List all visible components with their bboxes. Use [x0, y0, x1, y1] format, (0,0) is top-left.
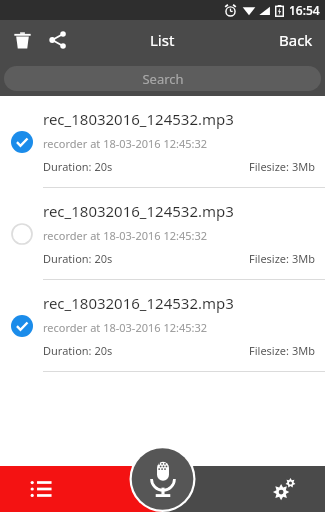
button[interactable]: rec_18032016_124532.mp3 [0, 188, 325, 280]
button[interactable]: Delete [4, 22, 40, 58]
staticText: Filesize: 3Mb [249, 159, 315, 174]
staticText: Duration: 20s [43, 251, 113, 266]
staticText: Filesize: 3Mb [249, 251, 315, 266]
staticText: Filesize: 3Mb [249, 343, 315, 358]
staticText: rec_18032016_124532.mp3 [43, 201, 234, 221]
button[interactable]: Back [267, 20, 325, 60]
staticText: 16:54 [289, 2, 320, 18]
staticText: recorder at 18-03-2016 12:45:32 [43, 228, 208, 243]
staticText: Duration: 20s [43, 343, 113, 358]
button[interactable]: Record [129, 446, 196, 512]
staticText: recorder at 18-03-2016 12:45:32 [43, 136, 208, 151]
staticText: Back [279, 30, 313, 50]
staticText: Duration: 20s [43, 159, 113, 174]
button[interactable]: rec_18032016_124532.mp3 [0, 96, 325, 188]
staticText: recorder at 18-03-2016 12:45:32 [43, 320, 208, 335]
button[interactable]: Search [4, 66, 321, 91]
button[interactable]: Share [40, 22, 76, 58]
staticText: rec_18032016_124532.mp3 [43, 293, 234, 313]
button[interactable]: rec_18032016_124532.mp3 [0, 280, 325, 372]
button[interactable]: List [0, 466, 162, 512]
button[interactable]: Settings [162, 466, 325, 512]
staticText: Search [142, 70, 184, 88]
staticText: List [150, 30, 175, 50]
staticText: rec_18032016_124532.mp3 [43, 109, 234, 129]
